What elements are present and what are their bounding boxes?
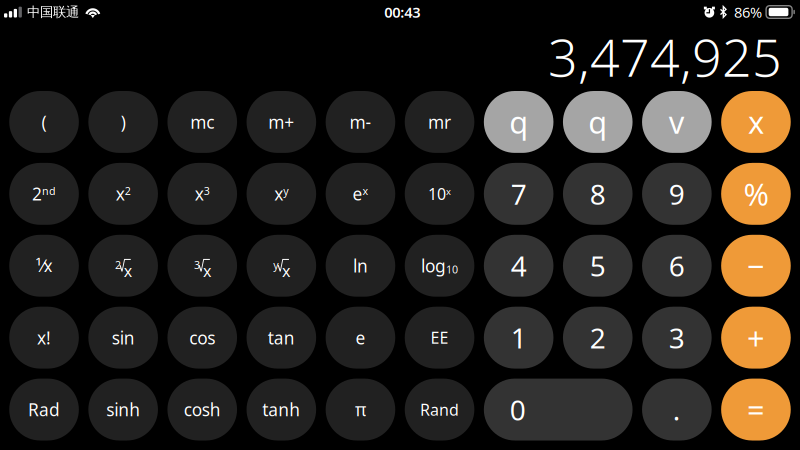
staticText: mr: [428, 110, 451, 133]
button[interactable]: 0: [484, 379, 633, 440]
button[interactable]: cosh: [167, 379, 237, 440]
staticText: 00:43: [384, 2, 420, 22]
staticText: sin: [112, 326, 135, 349]
button[interactable]: 2: [563, 307, 633, 369]
staticText: Rad: [28, 398, 60, 421]
staticText: x!: [37, 326, 51, 349]
staticText: 2: [590, 319, 606, 356]
staticText: ex: [352, 182, 368, 205]
staticText: x: [282, 260, 290, 281]
staticText: 3: [669, 319, 685, 356]
button[interactable]: 4: [484, 235, 553, 297]
button[interactable]: cos: [167, 307, 237, 369]
button[interactable]: xy: [246, 163, 316, 225]
button[interactable]: tanh: [246, 379, 316, 440]
button[interactable]: 3: [167, 235, 237, 297]
button[interactable]: log10: [405, 235, 474, 297]
button[interactable]: (: [9, 91, 79, 153]
button[interactable]: =: [721, 379, 791, 440]
button[interactable]: y: [246, 235, 316, 297]
staticText: −: [747, 245, 765, 286]
button[interactable]: sin: [88, 307, 158, 369]
button[interactable]: x: [721, 91, 791, 153]
button[interactable]: ): [88, 91, 158, 153]
button[interactable]: %: [721, 163, 791, 225]
staticText: 2: [115, 258, 121, 272]
staticText: ¹⁄x: [35, 254, 52, 277]
staticText: 7: [511, 175, 527, 212]
button[interactable]: tan: [246, 307, 316, 369]
button[interactable]: 5: [563, 235, 633, 297]
button[interactable]: 10x: [405, 163, 474, 225]
button[interactable]: Rand: [405, 379, 474, 440]
staticText: 1: [511, 319, 527, 356]
button[interactable]: v: [642, 91, 712, 153]
staticText: mc: [190, 110, 214, 133]
staticText: 3: [194, 258, 200, 272]
button[interactable]: +: [721, 307, 791, 369]
button[interactable]: ex: [326, 163, 395, 225]
button[interactable]: ¹⁄x: [9, 235, 79, 297]
button[interactable]: x2: [88, 163, 158, 225]
staticText: π: [355, 398, 366, 421]
staticText: 6: [669, 247, 685, 284]
staticText: EE: [430, 327, 448, 348]
staticText: %: [743, 173, 768, 214]
button[interactable]: 7: [484, 163, 553, 225]
staticText: 10x: [428, 183, 451, 204]
button[interactable]: 6: [642, 235, 712, 297]
staticText: ln: [353, 254, 368, 277]
button[interactable]: .: [642, 379, 712, 440]
staticText: m+: [268, 110, 294, 133]
staticText: 中国联通: [27, 4, 79, 20]
button[interactable]: 1: [484, 307, 553, 369]
staticText: =: [747, 389, 765, 430]
button[interactable]: q: [563, 91, 633, 153]
staticText: x3: [195, 182, 210, 205]
button[interactable]: −: [721, 235, 791, 297]
button[interactable]: mc: [167, 91, 237, 153]
staticText: tan: [268, 326, 295, 349]
staticText: Rand: [420, 399, 459, 420]
button[interactable]: 9: [642, 163, 712, 225]
staticText: cos: [189, 326, 215, 349]
staticText: 8: [590, 175, 606, 212]
staticText: 5: [590, 247, 606, 284]
button[interactable]: 2nd: [9, 163, 79, 225]
staticText: 9: [669, 175, 685, 212]
button[interactable]: ln: [326, 235, 395, 297]
staticText: xy: [274, 182, 288, 205]
staticText: ): [121, 110, 126, 133]
button[interactable]: m-: [326, 91, 395, 153]
staticText: m-: [349, 110, 371, 133]
button[interactable]: q: [484, 91, 553, 153]
staticText: +: [747, 317, 765, 358]
button[interactable]: e: [326, 307, 395, 369]
button[interactable]: 3: [642, 307, 712, 369]
staticText: v: [669, 102, 685, 142]
button[interactable]: m+: [246, 91, 316, 153]
staticText: tanh: [262, 398, 300, 421]
staticText: 2nd: [32, 182, 56, 205]
staticText: x2: [116, 182, 131, 205]
button[interactable]: π: [326, 379, 395, 440]
staticText: y: [273, 258, 278, 272]
button[interactable]: 2: [88, 235, 158, 297]
staticText: 3,474,925: [548, 22, 782, 91]
button[interactable]: x3: [167, 163, 237, 225]
button[interactable]: sinh: [88, 379, 158, 440]
staticText: q: [588, 102, 607, 142]
staticText: sinh: [106, 398, 140, 421]
staticText: x: [124, 260, 132, 281]
staticText: x: [203, 260, 211, 281]
staticText: .: [673, 391, 681, 428]
staticText: 4: [511, 247, 527, 284]
button[interactable]: mr: [405, 91, 474, 153]
staticText: x: [748, 102, 764, 142]
button[interactable]: EE: [405, 307, 474, 369]
staticText: log10: [421, 254, 458, 277]
button[interactable]: Rad: [9, 379, 79, 440]
staticText: q: [509, 102, 528, 142]
button[interactable]: x!: [9, 307, 79, 369]
button[interactable]: 8: [563, 163, 633, 225]
